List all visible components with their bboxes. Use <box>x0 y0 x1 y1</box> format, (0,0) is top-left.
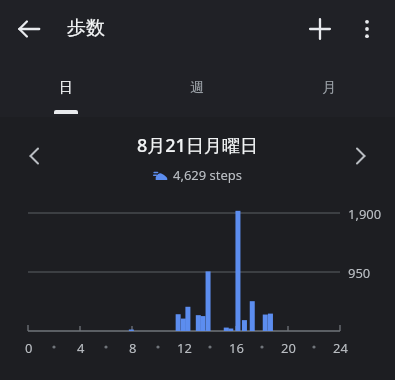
staticText: 歩数 <box>67 16 105 40</box>
staticText: 950 <box>348 264 371 282</box>
staticText: 20 <box>281 339 296 357</box>
button[interactable]: Add <box>304 13 336 45</box>
button[interactable]: 日 <box>0 58 131 117</box>
staticText: 4,629 steps <box>173 166 243 184</box>
staticText: 月 <box>322 79 336 97</box>
button[interactable]: Back <box>13 13 45 45</box>
staticText: 8 <box>129 339 137 357</box>
staticText: 24 <box>333 339 348 357</box>
staticText: 1,900 <box>348 205 382 223</box>
button[interactable]: More options <box>351 13 383 45</box>
staticText: 日 <box>59 79 73 97</box>
button[interactable]: 月 <box>263 58 395 117</box>
staticText: 8月21日月曜日 <box>137 133 258 158</box>
button[interactable]: Previous day <box>17 140 49 172</box>
staticText: 0 <box>25 339 33 357</box>
staticText: 12 <box>177 339 192 357</box>
staticText: 週 <box>190 79 204 97</box>
button[interactable]: 週 <box>131 58 263 117</box>
button[interactable]: Next day <box>346 140 378 172</box>
staticText: 16 <box>229 339 244 357</box>
staticText: 4 <box>77 339 85 357</box>
